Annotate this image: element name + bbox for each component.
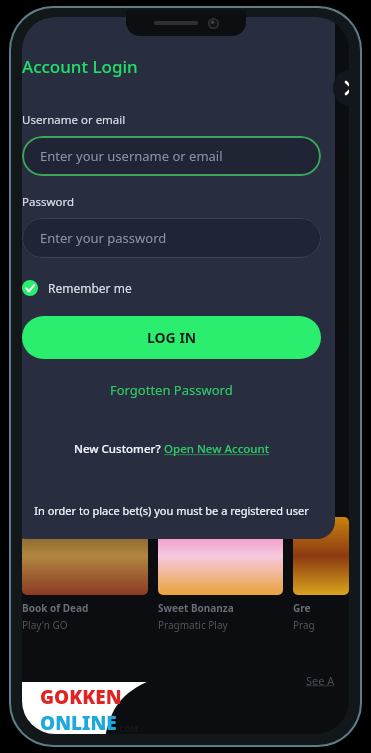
staticText: Book of Dead [22, 601, 89, 615]
staticText: ONLINE [40, 710, 117, 734]
button[interactable]: Gre [293, 517, 349, 632]
staticText: .COM [117, 723, 139, 734]
button[interactable]: LOG IN [22, 316, 321, 359]
staticText: Username or email [22, 112, 126, 128]
button[interactable]: Remember me [22, 278, 132, 298]
staticText: Remember me [48, 280, 132, 296]
button[interactable]: Book of Dead [22, 517, 148, 632]
staticText: Sweet Bonanza [158, 601, 234, 615]
staticText: Pragmatic Play [158, 618, 228, 632]
staticText: Password [22, 194, 75, 210]
staticText: GOKKEN [40, 684, 122, 710]
staticText: Play'n GO [22, 618, 68, 632]
staticText: Enter your password [40, 229, 167, 247]
staticText: Account Login [22, 55, 138, 78]
button[interactable]: Forgotten Password [106, 377, 237, 403]
staticText: LOG IN [147, 328, 197, 347]
staticText: See A [306, 673, 335, 688]
staticText: In order to place bet(s) you must be a r… [34, 503, 309, 518]
button[interactable]: Enter your password [22, 218, 321, 258]
button[interactable]: Close [333, 69, 349, 107]
button[interactable]: Sweet Bonanza [158, 517, 283, 632]
button[interactable]: Enter your username or email [22, 136, 321, 176]
staticText: Prag [293, 618, 315, 632]
staticText: Forgotten Password [110, 381, 233, 399]
button[interactable]: Open New Account [164, 441, 270, 457]
staticText: Enter your username or email [40, 147, 223, 165]
staticText: New Customer? [74, 441, 164, 457]
staticText: Open New Account [164, 441, 270, 457]
staticText: Gre [293, 601, 311, 615]
